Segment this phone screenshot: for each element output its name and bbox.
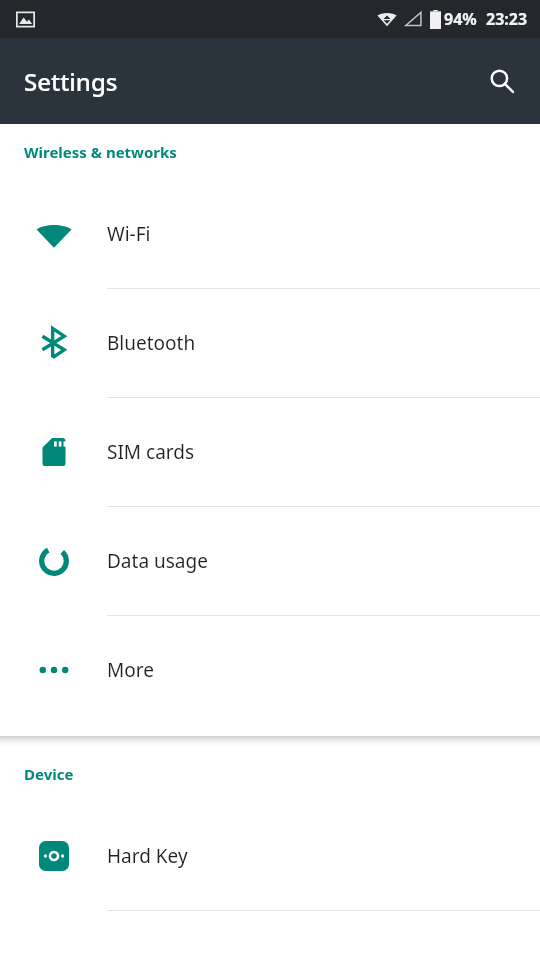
button[interactable]: SIM cards [0,398,540,506]
button[interactable]: Search [478,57,526,105]
staticText: SIM cards [107,439,195,465]
staticText: Wi-Fi [107,221,151,247]
button[interactable]: More [0,616,540,724]
staticText: Device [24,764,74,784]
staticText: Bluetooth [107,330,196,356]
staticText: Settings [24,65,118,98]
button[interactable]: Wi-Fi [0,180,540,288]
staticText: Data usage [107,548,208,574]
button[interactable]: Data usage [0,507,540,615]
staticText: 23:23 [486,8,528,30]
button[interactable]: Hard Key [0,802,540,910]
staticText: More [107,657,154,683]
staticText: 94% [444,8,477,30]
staticText: Wireless & networks [24,142,177,162]
staticText: Hard Key [107,843,188,869]
button[interactable]: Bluetooth [0,289,540,397]
